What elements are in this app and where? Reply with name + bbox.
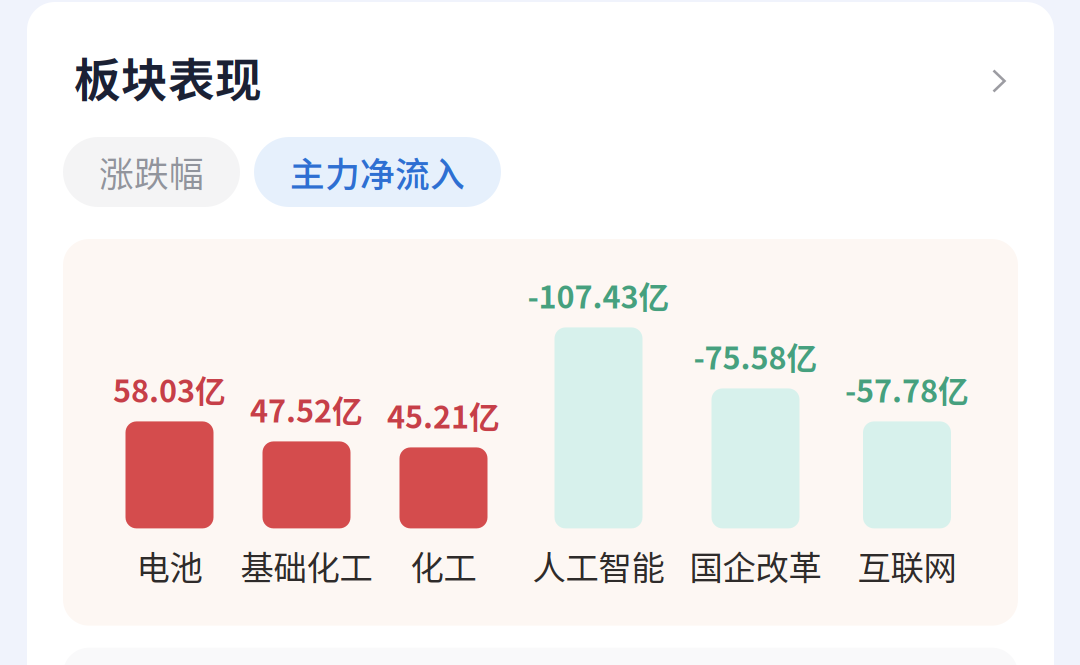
staticText: 国企改革 [689, 541, 821, 590]
staticText: 基础化工 [240, 541, 372, 590]
button[interactable]: 主力净流入 [254, 137, 501, 207]
staticText: -107.43亿 [527, 273, 669, 317]
staticText: 涨跌幅 [99, 147, 204, 197]
staticText: 45.21亿 [387, 393, 500, 437]
staticText: 58.03亿 [113, 367, 226, 411]
button[interactable]: 板块表现 [27, 2, 1054, 106]
staticText: 47.52亿 [250, 387, 363, 431]
staticText: 电池 [136, 541, 202, 590]
staticText: 主力净流入 [290, 147, 465, 197]
staticText: -57.78亿 [845, 367, 969, 411]
button[interactable]: 涨跌幅 [63, 137, 240, 207]
staticText: 板块表现 [74, 43, 262, 111]
staticText: 互联网 [857, 541, 956, 590]
staticText: -75.58亿 [693, 334, 817, 378]
staticText: 化工 [410, 541, 476, 590]
staticText: 人工智能 [532, 541, 664, 590]
